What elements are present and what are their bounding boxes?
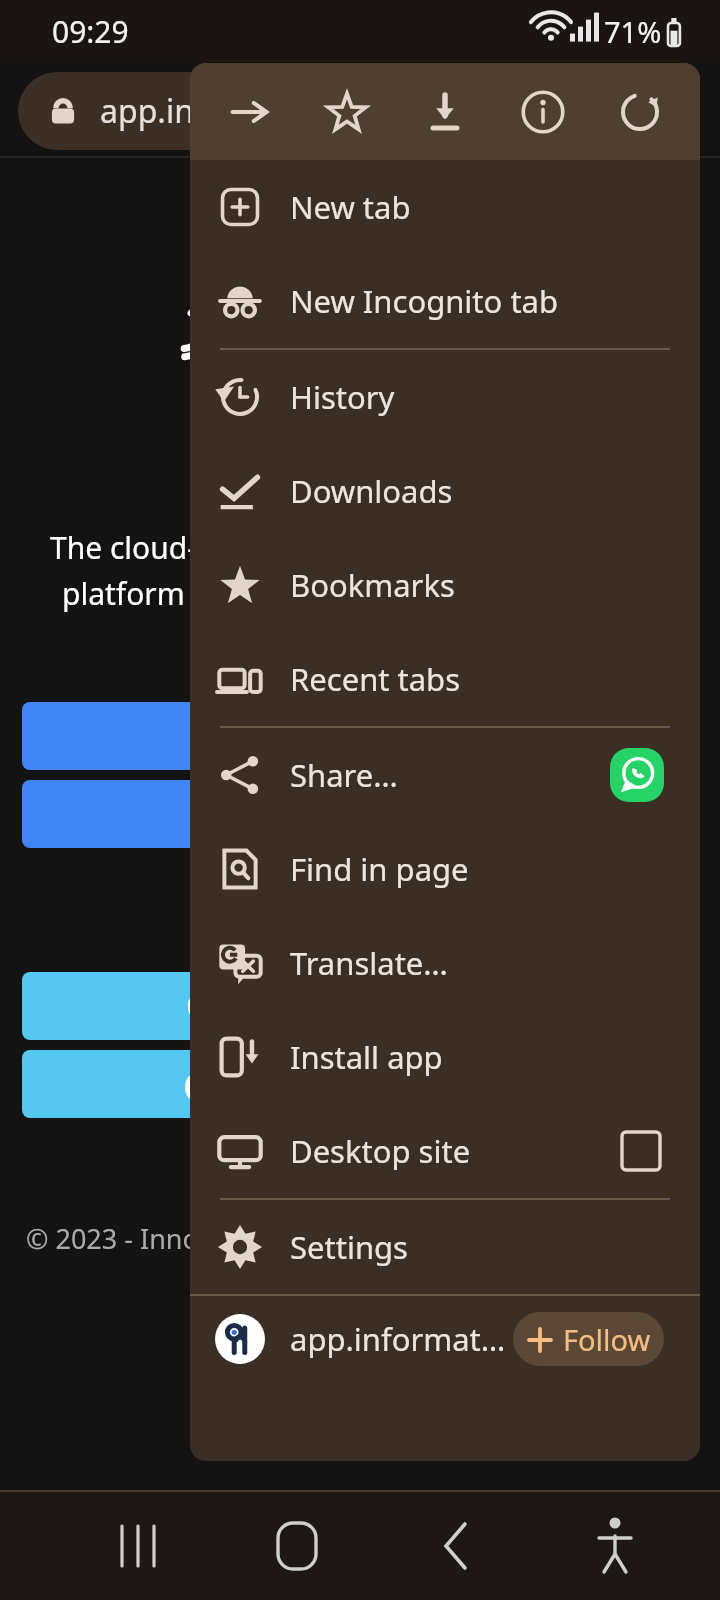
button[interactable]: RE	[22, 780, 232, 848]
staticText: History	[290, 376, 395, 418]
button[interactable]: Desktop site checkbox	[618, 1128, 664, 1174]
staticText: Downloads	[290, 470, 453, 512]
staticText: Share…	[290, 754, 398, 796]
staticText: Find in page	[290, 848, 469, 890]
button[interactable]: Reload	[602, 74, 678, 150]
staticText: Desktop site	[290, 1130, 471, 1172]
button[interactable]: Desktop site	[190, 1104, 700, 1198]
button[interactable]: Page info	[505, 74, 581, 150]
staticText: platform fo	[62, 573, 222, 614]
button[interactable]: app.informat…	[190, 1296, 700, 1382]
staticText: Recent tabs	[290, 658, 461, 700]
staticText: New tab	[290, 186, 411, 228]
button[interactable]: Back	[376, 1492, 535, 1600]
staticText: Install app	[290, 1036, 443, 1078]
button[interactable]	[22, 702, 232, 770]
button[interactable]: Recent apps	[58, 1492, 217, 1600]
button[interactable]: Home	[217, 1492, 376, 1600]
button[interactable]	[22, 1050, 232, 1118]
button[interactable]: Accessibility	[535, 1492, 694, 1600]
button[interactable]: Download page	[407, 74, 483, 150]
staticText: Bookmarks	[290, 564, 455, 606]
button[interactable]: app.info	[18, 72, 323, 150]
button[interactable]: Recent tabs	[190, 632, 700, 726]
staticText: Follow	[563, 1320, 651, 1359]
button[interactable]: Share via WhatsApp	[610, 748, 664, 802]
button[interactable]: Bookmarks	[190, 538, 700, 632]
button[interactable]: Follow	[513, 1312, 664, 1366]
button[interactable]: New Incognito tab	[190, 254, 700, 348]
button[interactable]: G	[22, 972, 232, 1040]
button[interactable]: Install app	[190, 1010, 700, 1104]
button[interactable]: Translate…	[190, 916, 700, 1010]
button[interactable]: Forward	[212, 74, 288, 150]
button[interactable]: Settings	[190, 1200, 700, 1294]
staticText: Settings	[290, 1226, 408, 1268]
staticText: © 2023 - Inno	[26, 1220, 199, 1257]
staticText: Translate…	[290, 942, 448, 984]
button[interactable]: Find in page	[190, 822, 700, 916]
staticText: G	[186, 982, 212, 1030]
button[interactable]: Share…	[190, 728, 700, 822]
staticText: 71%	[604, 12, 662, 51]
staticText: app.informat…	[290, 1318, 506, 1360]
staticText: app.info	[100, 89, 225, 133]
staticText: New Incognito tab	[290, 280, 559, 322]
button[interactable]: New tab	[190, 160, 700, 254]
button[interactable]: History	[190, 350, 700, 444]
staticText: The cloud-b	[50, 527, 216, 568]
button[interactable]: Bookmark this page	[309, 74, 385, 150]
button[interactable]: Downloads	[190, 444, 700, 538]
staticText: 09:29	[52, 11, 129, 52]
